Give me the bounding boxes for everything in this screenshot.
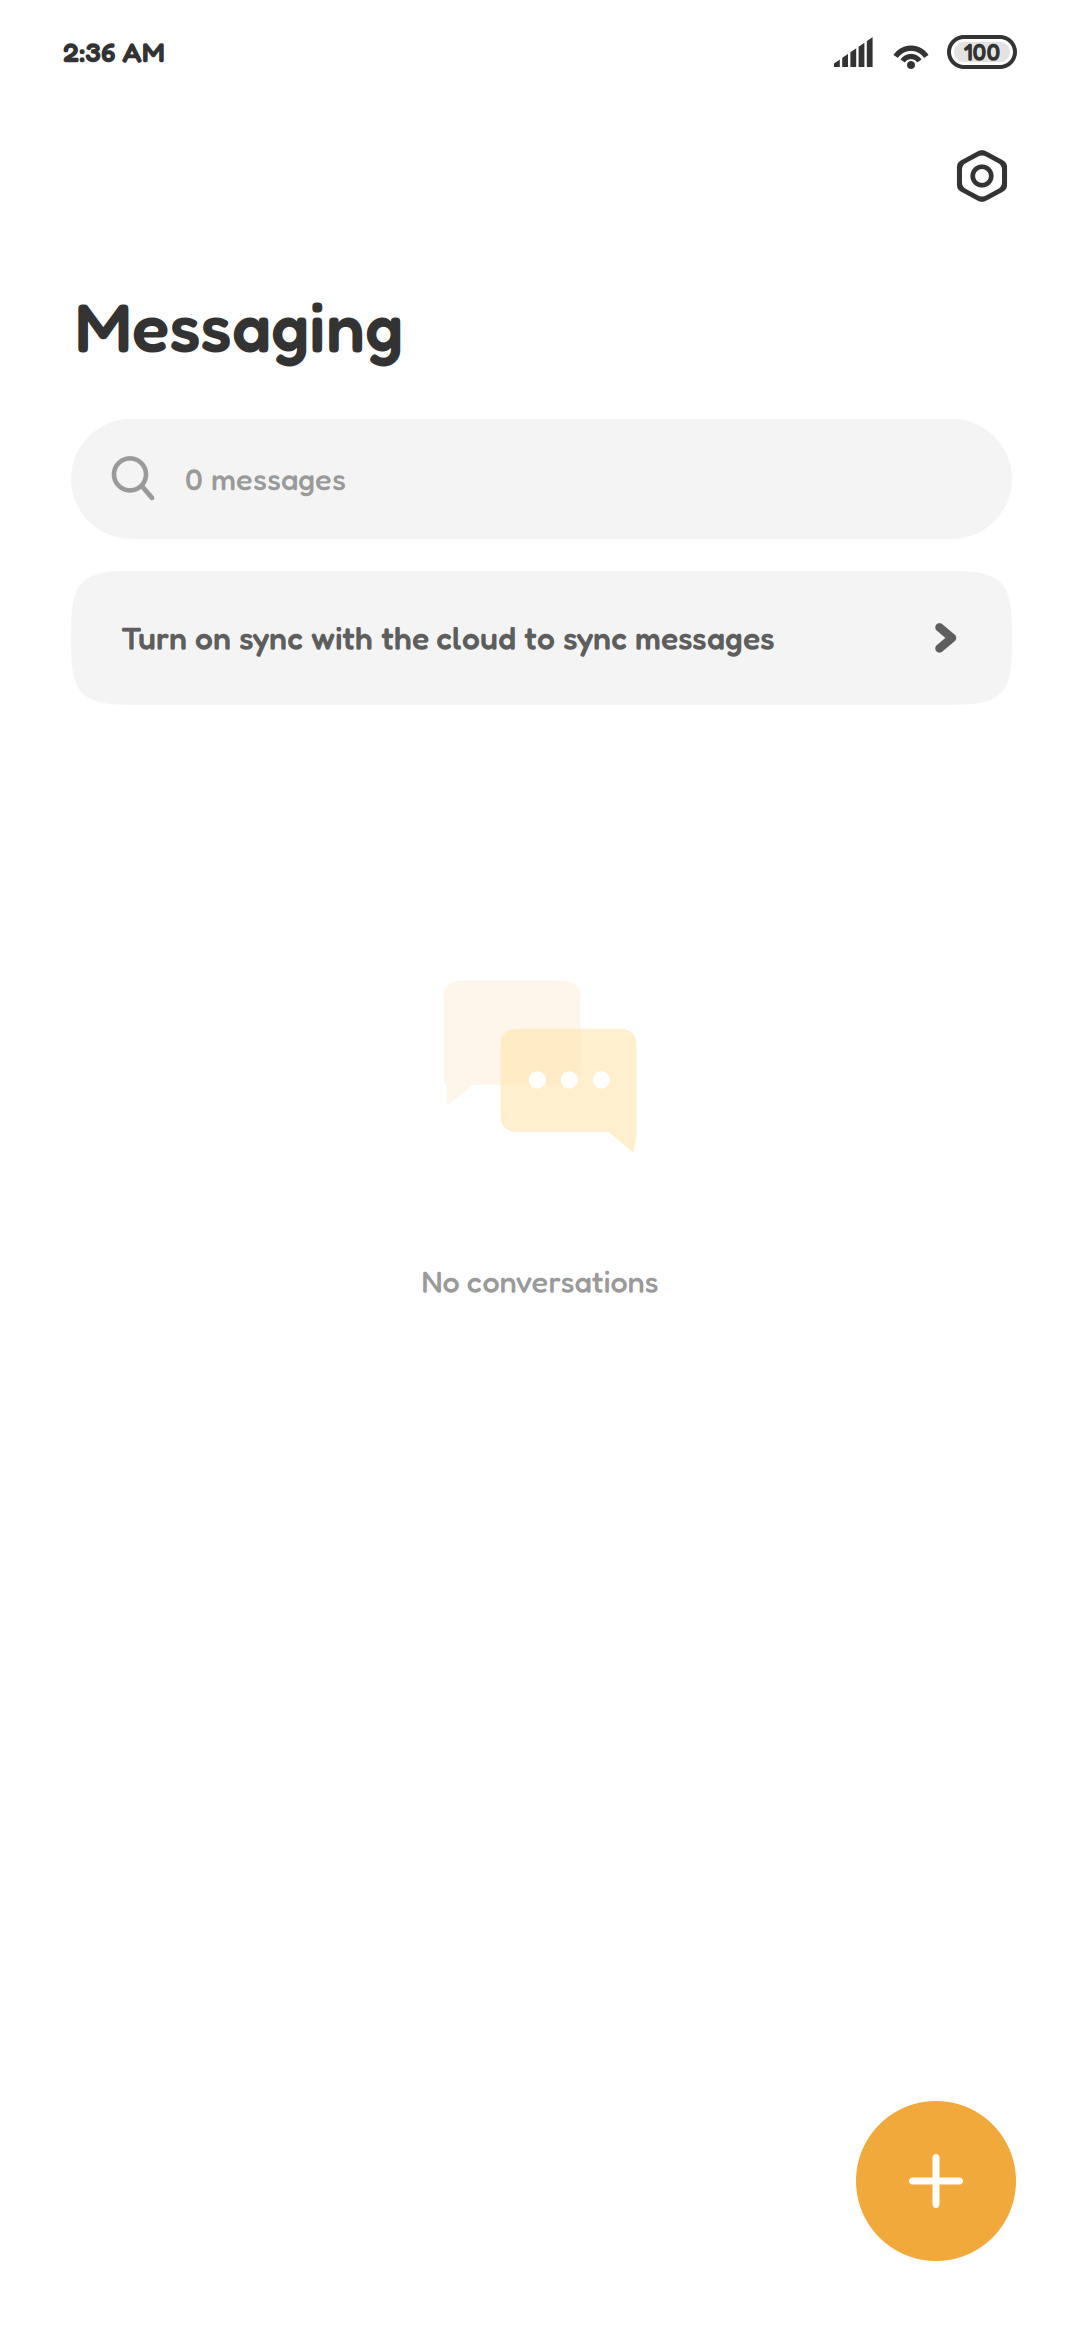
staticText: 0 messages (185, 460, 346, 497)
staticText: 100 (963, 37, 1000, 66)
button[interactable]: 0 messages (71, 419, 1012, 539)
staticText: No conversations (421, 1263, 658, 1300)
staticText: Messaging (75, 284, 403, 368)
button[interactable]: Settings (933, 118, 1031, 234)
button[interactable]: Turn on sync with the cloud to sync mess… (71, 571, 1012, 705)
button[interactable]: New message (856, 2101, 1016, 2261)
staticText: Turn on sync with the cloud to sync mess… (121, 618, 775, 657)
staticText: 2:36 AM (63, 35, 165, 69)
